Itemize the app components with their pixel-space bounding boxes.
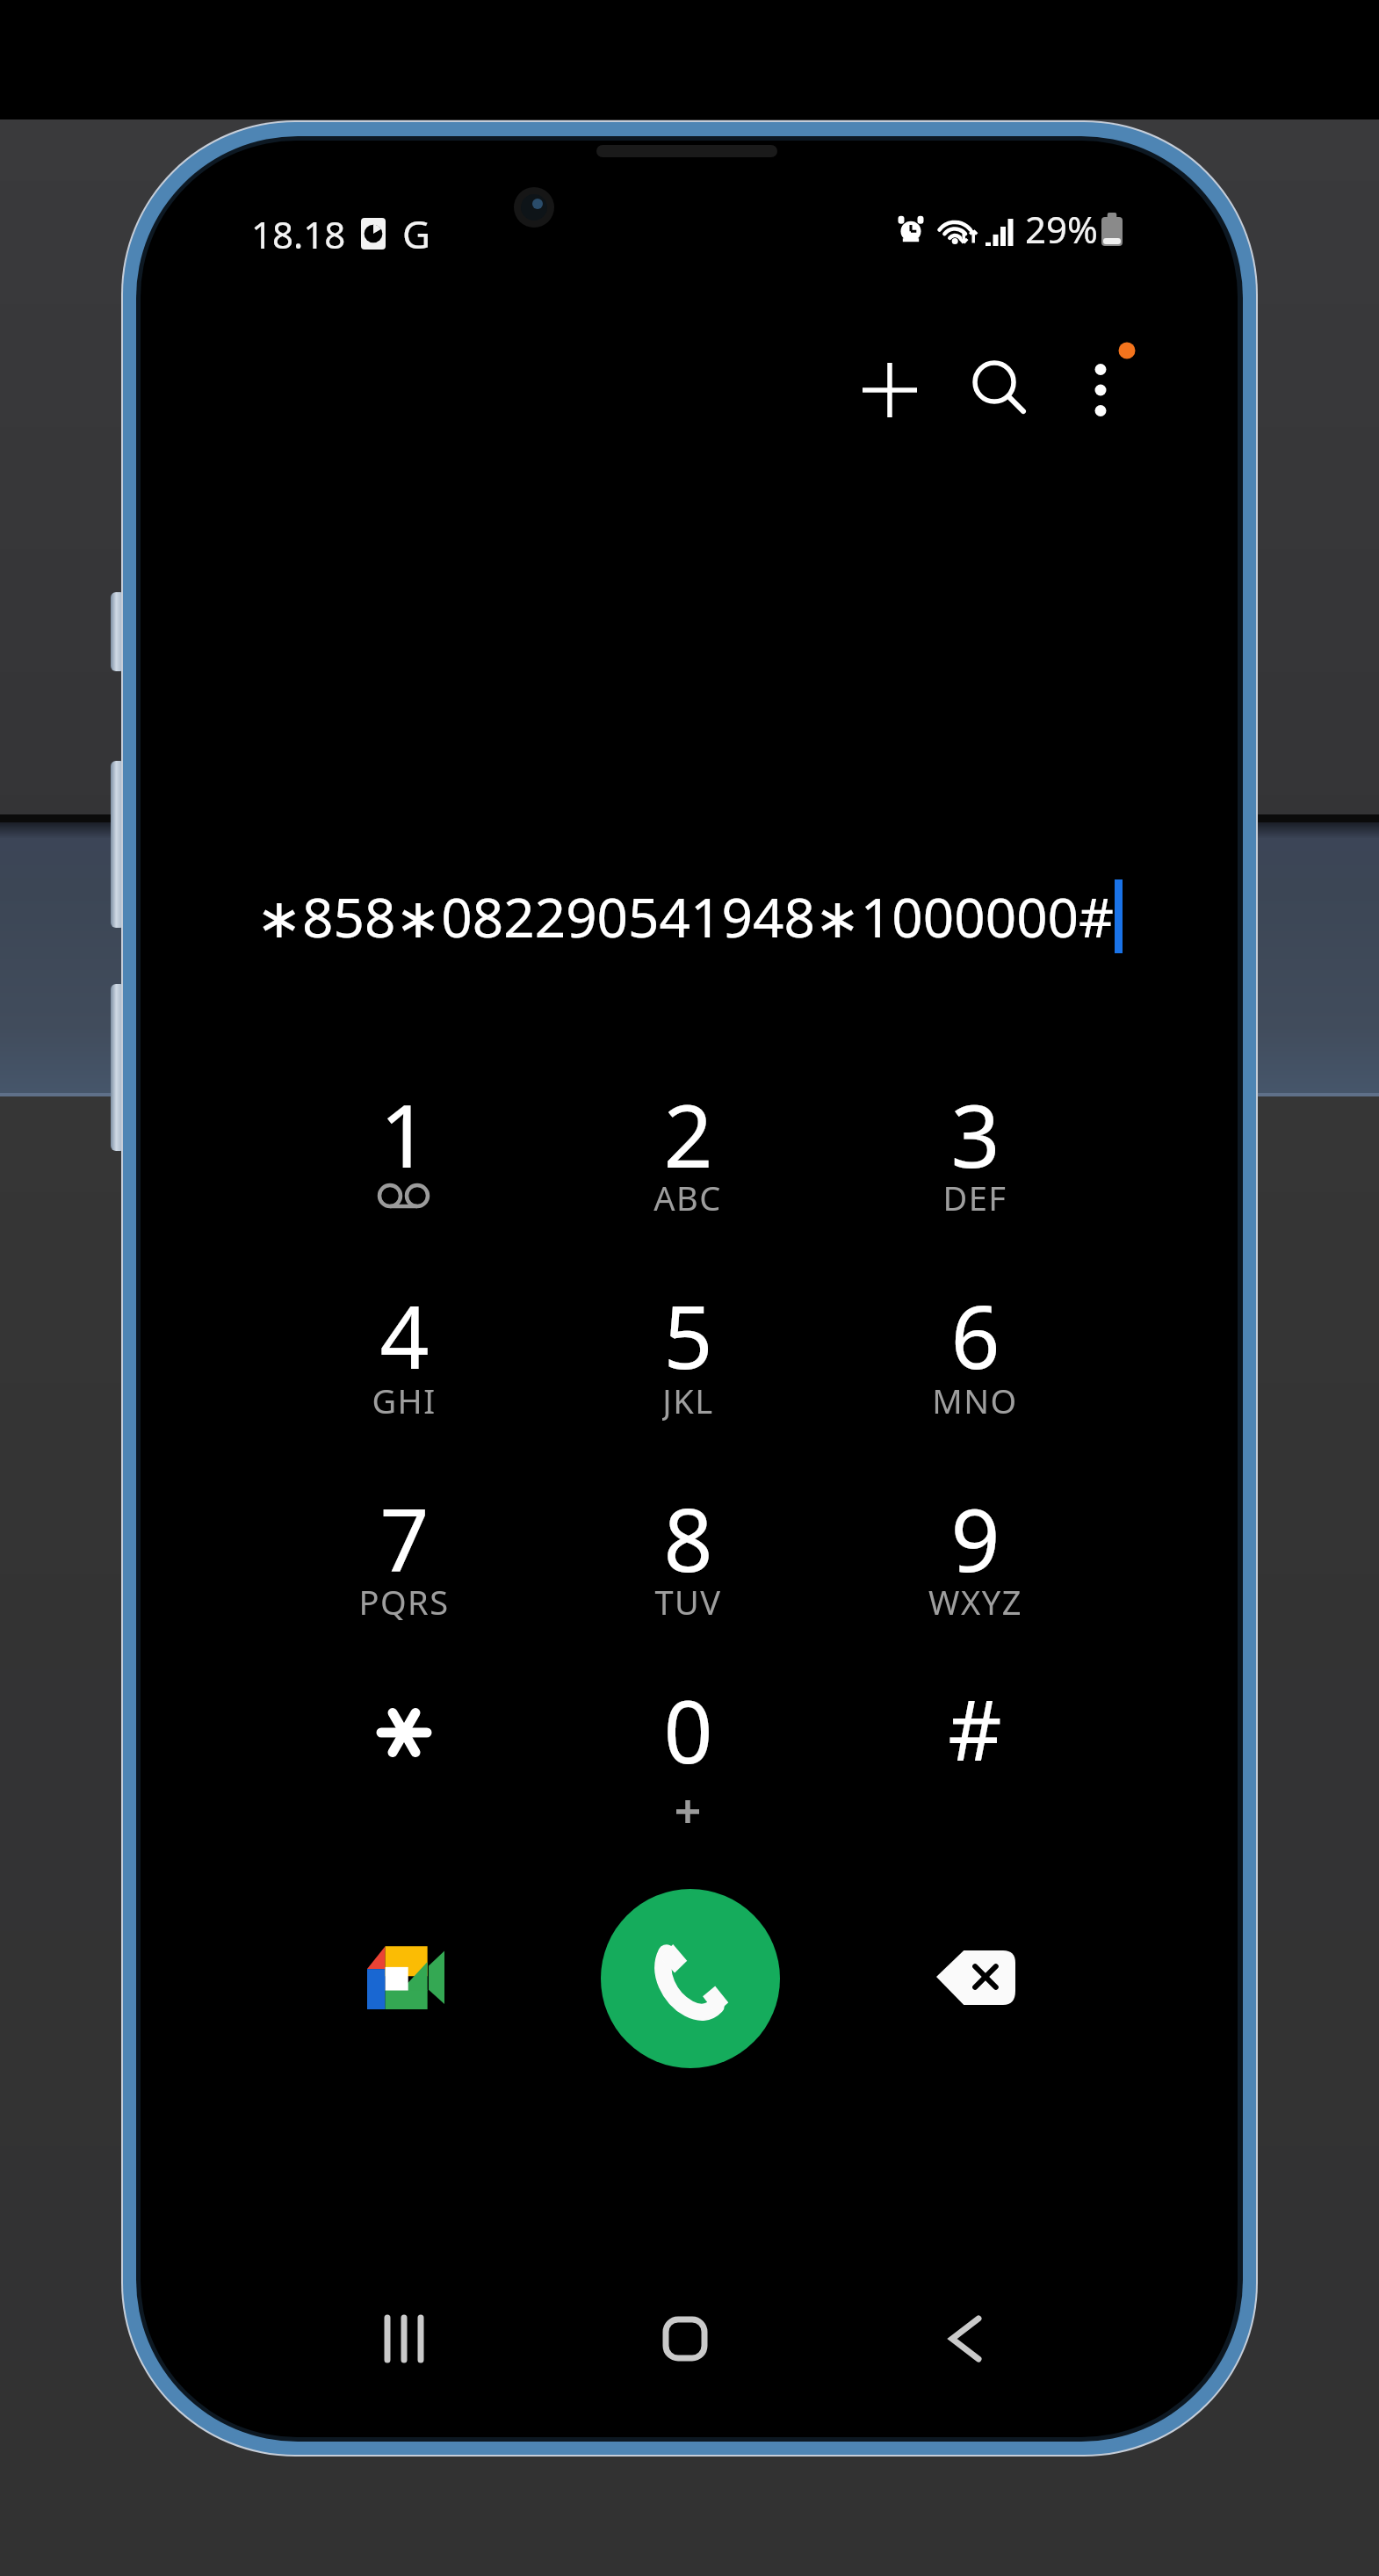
staticText: 29% [1025,204,1098,254]
button[interactable]: 3 DEF [834,1063,1115,1252]
button[interactable]: Back [886,2286,1044,2391]
button[interactable]: Search [940,333,1054,447]
staticText: MNO [932,1378,1018,1422]
staticText: 0 [663,1671,713,1788]
button[interactable]: 2 ABC [547,1063,828,1252]
staticText: 4 [379,1277,430,1393]
button[interactable]: pound [834,1659,1115,1848]
button[interactable]: Home [606,2286,764,2391]
staticText: G [402,207,431,260]
button[interactable]: 6 MNO [834,1264,1115,1453]
button[interactable]: More options [1043,333,1158,447]
staticText: 8 [663,1480,713,1596]
button[interactable]: 4 GHI [264,1264,545,1453]
button[interactable]: 8 TUV [547,1467,828,1656]
button[interactable]: Backspace [922,1924,1028,2030]
staticText: 1 [379,1075,430,1192]
staticText: 5 [663,1277,713,1393]
button[interactable]: 7 PQRS [264,1467,545,1656]
staticText: PQRS [358,1579,450,1623]
staticText: WXYZ [928,1579,1022,1623]
button[interactable]: 0 plus [547,1659,828,1848]
staticText: ∗858∗082290541948∗1000000# [256,879,1115,953]
button[interactable]: Add contact [833,333,947,447]
button[interactable]: star [264,1659,545,1848]
staticText: ABC [653,1175,722,1219]
staticText: DEF [942,1175,1007,1219]
button[interactable]: 9 WXYZ [834,1467,1115,1656]
staticText: GHI [372,1378,437,1422]
staticText: 6 [950,1277,1000,1393]
button[interactable]: 5 JKL [547,1264,828,1453]
button[interactable]: Recents [325,2286,483,2391]
button[interactable]: 1 voicemail [264,1063,545,1252]
staticText: 3 [950,1075,1000,1192]
staticText: 18.18 [251,209,346,259]
staticText: TUV [654,1579,722,1623]
staticText: 2 [663,1075,713,1192]
staticText: 7 [379,1480,430,1596]
staticText: # [948,1671,1002,1784]
staticText: JKL [662,1378,714,1422]
staticText: 9 [950,1480,1000,1596]
button[interactable]: Call [601,1889,780,2068]
button[interactable]: Video call [353,1924,458,2030]
